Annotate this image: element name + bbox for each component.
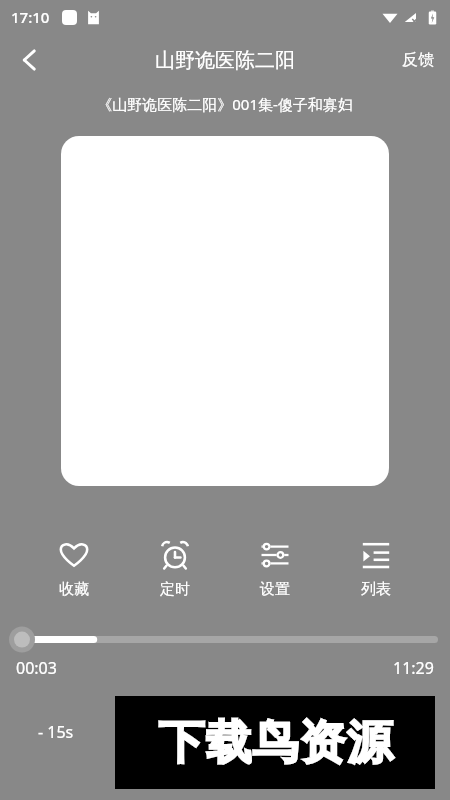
- button[interactable]: Play: [196, 703, 254, 761]
- staticText: 00:03: [16, 657, 57, 679]
- staticText: 列表: [361, 580, 391, 599]
- staticText: 17:10: [11, 7, 50, 27]
- button[interactable]: Cover art: [61, 136, 389, 486]
- button[interactable]: - 15s: [18, 709, 94, 755]
- button[interactable]: 列表: [335, 536, 417, 603]
- button[interactable]: 反馈: [386, 40, 450, 80]
- staticText: 设置: [260, 580, 290, 599]
- staticText: - 15s: [38, 721, 74, 743]
- button[interactable]: 设置: [234, 536, 316, 603]
- button[interactable]: Next: [282, 709, 328, 755]
- staticText: 反馈: [402, 50, 434, 70]
- staticText: 《山野诡医陈二阳》001集-傻子和寡妇: [97, 94, 353, 114]
- button[interactable]: Back: [4, 34, 56, 86]
- staticText: 山野诡医陈二阳: [155, 48, 295, 73]
- button[interactable]: Previous: [122, 709, 168, 755]
- button[interactable]: Seek bar: [0, 625, 450, 653]
- staticText: 下载鸟资源: [158, 714, 393, 772]
- button[interactable]: Forward 15 seconds: [356, 709, 432, 755]
- staticText: 11:29: [393, 657, 434, 679]
- staticText: 定时: [160, 580, 190, 599]
- button[interactable]: 收藏: [33, 536, 115, 603]
- staticText: 收藏: [59, 580, 89, 599]
- button[interactable]: 定时: [134, 536, 216, 603]
